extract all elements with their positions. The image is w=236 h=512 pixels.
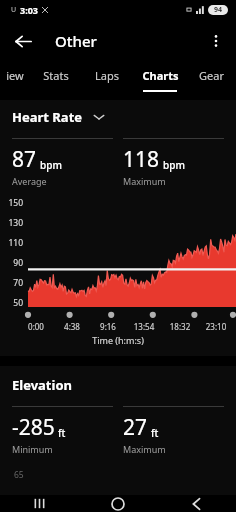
staticText: iew [6,68,24,83]
staticText: 23:10 [198,321,234,332]
staticText: Other [55,31,97,51]
button[interactable]: Recent apps [0,495,78,512]
button[interactable]: More options [200,25,232,57]
button[interactable]: Back [6,24,40,58]
staticText: 87 [12,145,37,174]
button[interactable]: Stats [30,62,81,90]
staticText: 9:16 [90,321,126,332]
button[interactable]: Heart Rate [12,108,224,126]
staticText: Time (h:m:s) [0,334,236,346]
staticText: 0:00 [18,321,54,332]
staticText: Heart Rate [12,108,83,126]
staticText: 150 [8,197,23,209]
staticText: Charts [142,68,179,83]
staticText: 110 [8,237,23,249]
button[interactable]: Charts [133,62,187,92]
staticText: 50 [13,297,23,309]
staticText: Maximum [123,443,166,455]
staticText: 27 [123,413,148,442]
staticText: Minimum [12,443,53,455]
staticText: Average [12,175,47,187]
button[interactable]: iew [0,62,30,90]
staticText: 94 [214,5,223,15]
staticText: Maximum [123,175,166,187]
staticText: 13:54 [126,321,162,332]
staticText: Laps [95,68,119,83]
button[interactable]: Gear [187,62,236,90]
staticText: Stats [43,68,69,83]
button[interactable]: Home [78,495,157,512]
staticText: ft [58,426,66,440]
staticText: 130 [8,217,23,229]
staticText: 65 [14,469,24,481]
staticText: bpm [40,158,62,172]
button[interactable]: Elevation [12,376,224,394]
staticText: 70 [13,277,23,289]
staticText: ft [151,426,159,440]
staticText: 4:38 [54,321,90,332]
staticText: bpm [163,158,185,172]
staticText: 18:32 [162,321,198,332]
staticText: -285 [12,413,55,442]
staticText: 90 [13,257,23,269]
staticText: Gear [199,68,224,83]
button[interactable]: Back [157,495,236,512]
staticText: Elevation [12,376,72,394]
staticText: 3:03 [20,4,38,16]
staticText: U [11,5,17,15]
button[interactable]: Laps [81,62,133,90]
staticText: 118 [123,145,160,174]
